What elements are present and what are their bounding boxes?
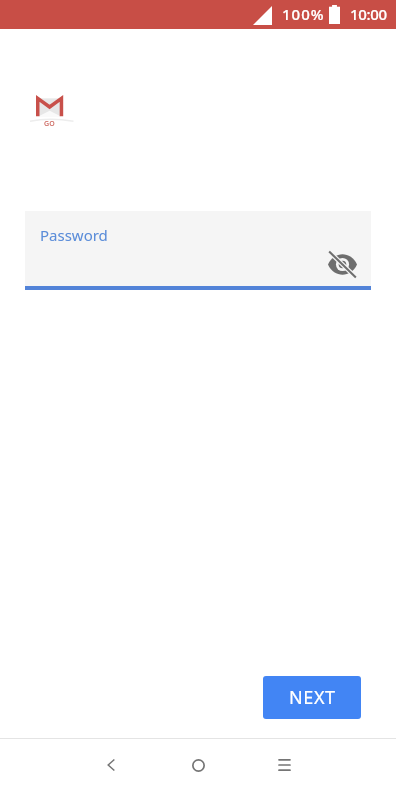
button[interactable]: Back <box>89 743 133 787</box>
button[interactable]: Show password <box>320 244 364 284</box>
staticText: 10:00 <box>350 4 387 24</box>
button[interactable]: Recent apps <box>262 743 306 787</box>
staticText: GO <box>44 119 55 129</box>
button[interactable]: Password <box>25 211 371 286</box>
staticText: NEXT <box>289 685 336 710</box>
button[interactable]: NEXT <box>263 676 361 719</box>
staticText: Password <box>40 225 108 245</box>
button[interactable]: Home <box>176 743 220 787</box>
staticText: 100% <box>282 4 325 24</box>
